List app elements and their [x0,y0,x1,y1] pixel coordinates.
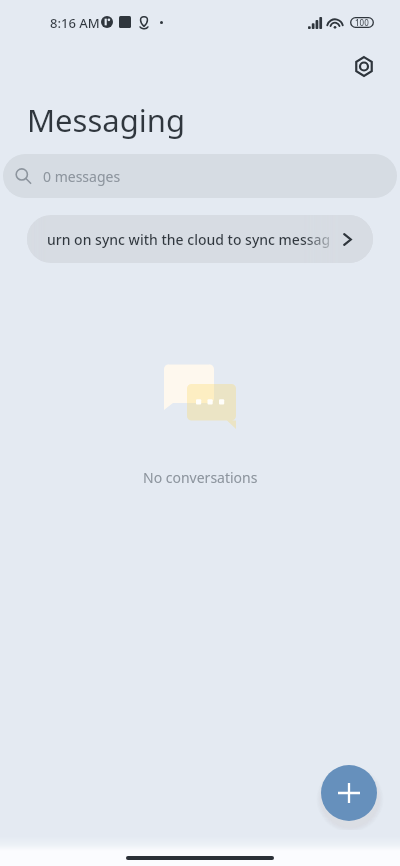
staticText: 100 [355,17,369,28]
staticText: 8:16 AM [50,14,100,32]
staticText: 0 messages [43,167,121,186]
button[interactable]: Start new conversation [321,765,377,821]
button[interactable]: urn on sync with the cloud to sync messa… [27,215,373,263]
button[interactable]: Settings [347,50,380,83]
button[interactable]: 0 messages [3,154,397,198]
staticText: urn on sync with the cloud to sync messa… [47,230,331,249]
staticText: Messaging [27,99,185,141]
staticText: No conversations [143,468,258,487]
